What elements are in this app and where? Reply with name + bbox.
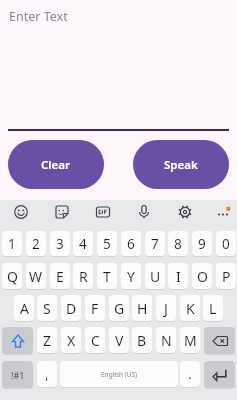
staticText: Y [127, 267, 135, 286]
button[interactable] [204, 327, 235, 355]
button[interactable]: S [37, 295, 57, 322]
staticText: 4 [79, 235, 87, 253]
staticText: N [161, 331, 172, 350]
staticText: P [222, 267, 231, 286]
staticText: 5 [103, 235, 111, 253]
button[interactable]: E [50, 263, 70, 290]
button[interactable]: Speak [133, 140, 229, 189]
button[interactable]: 1 [2, 231, 22, 257]
button[interactable] [2, 327, 33, 355]
staticText: X [67, 331, 76, 350]
button[interactable]: V [109, 327, 129, 354]
button[interactable] [88, 200, 118, 224]
button[interactable]: K [180, 295, 200, 322]
staticText: , [45, 365, 49, 383]
button[interactable]: 0 [216, 231, 236, 257]
staticText: R [79, 267, 88, 286]
button[interactable]: L [203, 295, 223, 322]
staticText: I [176, 267, 181, 286]
button[interactable]: I [168, 263, 188, 290]
button[interactable] [170, 200, 200, 224]
button[interactable]: X [61, 327, 81, 354]
button[interactable] [6, 200, 36, 224]
button[interactable]: A [14, 295, 34, 322]
staticText: T [103, 267, 111, 286]
staticText: J [164, 299, 168, 318]
staticText: Q [7, 267, 18, 286]
button[interactable]: , [37, 361, 57, 388]
staticText: C [91, 331, 100, 350]
staticText: 0 [222, 235, 230, 253]
staticText: 1 [8, 235, 16, 253]
staticText: H [137, 299, 148, 318]
staticText: English (US) [101, 370, 138, 379]
staticText: B [137, 331, 147, 350]
staticText: Clear [41, 157, 71, 173]
button[interactable]: O [192, 263, 212, 290]
button[interactable]: W [26, 263, 46, 290]
button[interactable] [47, 200, 77, 224]
button[interactable]: Q [2, 263, 22, 290]
button[interactable]: 2 [26, 231, 46, 257]
button[interactable]: Y [121, 263, 141, 290]
button[interactable] [211, 200, 237, 224]
button[interactable]: R [73, 263, 93, 290]
staticText: . [188, 365, 192, 383]
button[interactable]: M [180, 327, 200, 354]
button[interactable]: B [132, 327, 152, 354]
staticText: D [66, 299, 77, 318]
button[interactable]: U [145, 263, 165, 290]
staticText: 7 [151, 235, 159, 253]
button[interactable]: 8 [168, 231, 188, 257]
staticText: U [150, 267, 161, 286]
staticText: 6 [127, 235, 135, 253]
button[interactable] [129, 200, 159, 224]
staticText: S [43, 299, 51, 318]
staticText: 2 [32, 235, 40, 253]
staticText: E [56, 267, 64, 286]
button[interactable]: T [97, 263, 117, 290]
button[interactable]: F [85, 295, 105, 322]
staticText: M [184, 331, 197, 350]
staticText: 8 [174, 235, 182, 253]
staticText: Speak [164, 157, 198, 173]
button[interactable]: 4 [73, 231, 93, 257]
button[interactable]: 6 [121, 231, 141, 257]
button[interactable]: !#1 [2, 361, 33, 389]
staticText: 9 [198, 235, 206, 253]
staticText: V [115, 331, 124, 350]
staticText: O [197, 267, 208, 286]
button[interactable]: C [85, 327, 105, 354]
button[interactable]: . [180, 361, 200, 388]
staticText: A [20, 299, 29, 318]
button[interactable]: G [109, 295, 129, 322]
button[interactable] [204, 361, 235, 389]
staticText: K [186, 299, 195, 318]
staticText: L [209, 299, 217, 318]
button[interactable]: P [216, 263, 236, 290]
staticText: F [91, 299, 99, 318]
staticText: Enter Text [9, 8, 68, 25]
button[interactable]: N [156, 327, 176, 354]
staticText: !#1 [11, 369, 25, 381]
button[interactable]: 7 [145, 231, 165, 257]
staticText: W [29, 267, 43, 286]
button[interactable]: Z [37, 327, 57, 354]
button[interactable]: H [132, 295, 152, 322]
button[interactable]: J [156, 295, 176, 322]
staticText: G [114, 299, 125, 318]
staticText: 3 [56, 235, 64, 253]
button[interactable]: English (US) [60, 361, 178, 388]
button[interactable]: 5 [97, 231, 117, 257]
button[interactable]: Clear [8, 140, 104, 189]
button[interactable]: 3 [50, 231, 70, 257]
staticText: Z [43, 331, 52, 350]
button[interactable]: D [61, 295, 81, 322]
button[interactable]: 9 [192, 231, 212, 257]
